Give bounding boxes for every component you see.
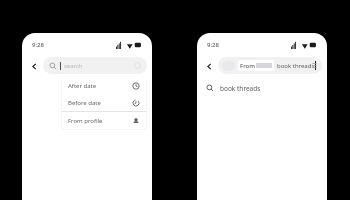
button[interactable]: Back <box>27 59 41 73</box>
button[interactable]: search <box>43 57 147 74</box>
button[interactable]: book threads <box>197 80 327 96</box>
staticText: From profile <box>68 117 103 125</box>
staticText: search <box>64 62 83 70</box>
staticText: After date <box>68 82 97 90</box>
button[interactable]: From <box>238 60 274 71</box>
button[interactable]: After date <box>62 77 146 94</box>
button[interactable]: Before date <box>62 94 146 111</box>
staticText: From <box>240 62 255 70</box>
button[interactable]: Filter chip <box>218 57 322 74</box>
button[interactable]: From profile <box>62 112 146 129</box>
button[interactable]: Back <box>202 59 216 73</box>
staticText: Before date <box>68 99 101 107</box>
staticText: book threads <box>220 84 261 93</box>
staticText: book threads <box>277 62 315 70</box>
staticText: 9:28 <box>207 41 219 49</box>
staticText: 9:28 <box>32 41 44 49</box>
